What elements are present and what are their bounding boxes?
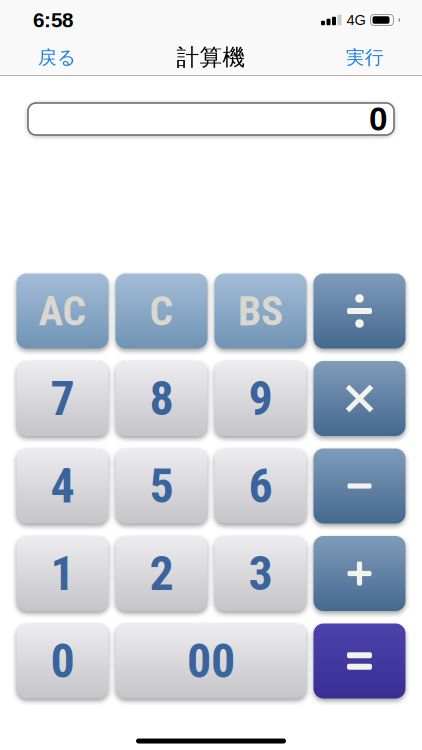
button[interactable]: 7 bbox=[16, 361, 108, 436]
button[interactable]: 9 bbox=[214, 361, 306, 436]
button[interactable]: 2 bbox=[115, 536, 207, 611]
staticText: 9 bbox=[248, 370, 272, 427]
staticText: 5 bbox=[149, 458, 173, 514]
staticText: AC bbox=[38, 287, 86, 335]
button[interactable]: AC bbox=[16, 273, 108, 348]
button[interactable]: 8 bbox=[115, 361, 207, 436]
button[interactable]: 戻る bbox=[0, 46, 76, 69]
staticText: BS bbox=[238, 287, 283, 335]
button[interactable]: C bbox=[115, 273, 207, 348]
staticText: 7 bbox=[50, 370, 74, 427]
staticText: 4G bbox=[346, 12, 365, 28]
button[interactable]: 実行 bbox=[346, 46, 422, 69]
button[interactable]: 1 bbox=[16, 536, 108, 611]
button[interactable]: 3 bbox=[214, 536, 306, 611]
button[interactable]: 6 bbox=[214, 448, 306, 523]
staticText: 0 bbox=[50, 633, 74, 689]
staticText: 計算機 bbox=[176, 44, 245, 71]
staticText: 戻る bbox=[38, 46, 76, 69]
button[interactable]: Multiply bbox=[313, 361, 405, 436]
button[interactable]: 4 bbox=[16, 448, 108, 523]
staticText: 6 bbox=[248, 458, 272, 514]
staticText: 2 bbox=[149, 545, 173, 602]
staticText: 8 bbox=[149, 370, 173, 427]
staticText: 3 bbox=[248, 545, 272, 602]
button[interactable]: BS bbox=[214, 273, 306, 348]
staticText: 6:58 bbox=[33, 8, 73, 32]
staticText: 実行 bbox=[346, 46, 384, 69]
staticText: 00 bbox=[187, 633, 235, 689]
button[interactable]: 00 bbox=[115, 623, 306, 698]
staticText: 0 bbox=[369, 100, 388, 138]
staticText: C bbox=[149, 287, 173, 335]
staticText: 4 bbox=[50, 458, 74, 514]
button[interactable]: 0 bbox=[16, 623, 108, 698]
button[interactable]: Divide bbox=[313, 273, 405, 348]
button[interactable]: 5 bbox=[115, 448, 207, 523]
button[interactable]: Equals bbox=[313, 623, 405, 698]
button[interactable]: Subtract bbox=[313, 448, 405, 523]
button[interactable]: Add bbox=[313, 536, 405, 611]
staticText: 1 bbox=[50, 545, 74, 602]
